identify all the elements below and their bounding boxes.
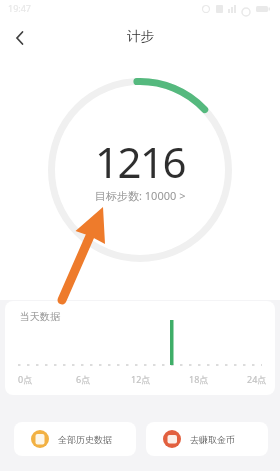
staticText: 全部历史数据 [58, 434, 112, 445]
staticText: 计步 [127, 28, 154, 45]
staticText: 18点 [189, 373, 209, 385]
button[interactable]: 目标步数: 10000 > [0, 188, 280, 203]
staticText: 12点 [131, 373, 151, 385]
staticText: 24点 [247, 373, 267, 385]
button[interactable]: 全部历史数据 [14, 422, 136, 456]
staticText: 去赚取金币 [190, 434, 235, 445]
staticText: 19:47 [8, 2, 32, 14]
staticText: 1216 [95, 133, 186, 190]
button[interactable] [12, 30, 28, 46]
staticText: 当天数据 [20, 310, 60, 323]
button[interactable]: 去赚取金币 [146, 422, 268, 456]
staticText: 6点 [76, 373, 91, 385]
staticText: 0点 [18, 373, 33, 385]
staticText: 目标步数: 10000 > [95, 188, 186, 203]
